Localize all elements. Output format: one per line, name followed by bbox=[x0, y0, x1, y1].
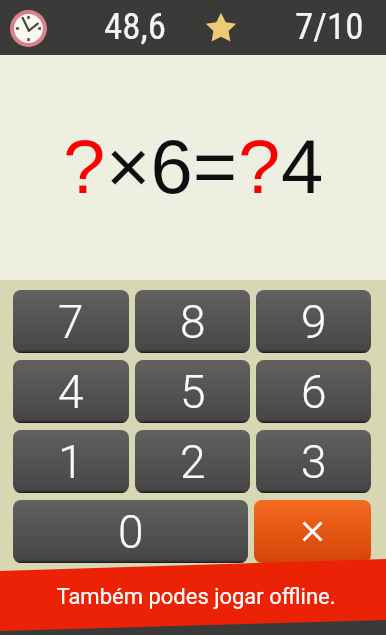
button[interactable]: Também podes jogar offline. bbox=[0, 0, 386, 635]
staticText: 4 bbox=[281, 124, 324, 209]
other: Stars bbox=[203, 12, 239, 44]
staticText: 6 bbox=[301, 365, 327, 419]
staticText: ? bbox=[238, 124, 281, 209]
button[interactable]: 1 bbox=[13, 430, 129, 493]
staticText: 5 bbox=[180, 365, 206, 419]
button[interactable]: 2 bbox=[135, 430, 250, 493]
staticText: 4 bbox=[58, 365, 84, 419]
staticText: 8 bbox=[180, 295, 206, 349]
button[interactable]: Timer bbox=[10, 10, 47, 47]
staticText: 7 bbox=[58, 295, 84, 349]
button[interactable]: Delete bbox=[254, 500, 371, 563]
button[interactable]: 4 bbox=[13, 360, 129, 423]
button[interactable]: 3 bbox=[256, 430, 371, 493]
staticText: 48,6 bbox=[104, 5, 167, 48]
staticText: ? bbox=[63, 124, 106, 209]
staticText: 3 bbox=[301, 435, 327, 489]
staticText: 0 bbox=[118, 505, 144, 559]
button[interactable]: 6 bbox=[256, 360, 371, 423]
button[interactable]: 8 bbox=[135, 290, 250, 353]
staticText: 1 bbox=[58, 435, 84, 489]
button[interactable]: 0 bbox=[13, 500, 248, 563]
button[interactable]: 9 bbox=[256, 290, 371, 353]
staticText: Também podes jogar offline. bbox=[56, 584, 336, 610]
staticText: 9 bbox=[301, 295, 327, 349]
button[interactable]: 7 bbox=[13, 290, 129, 353]
staticText: ×6= bbox=[106, 124, 238, 209]
button[interactable]: 5 bbox=[135, 360, 250, 423]
staticText: 7/10 bbox=[295, 5, 364, 48]
staticText: 2 bbox=[180, 435, 206, 489]
